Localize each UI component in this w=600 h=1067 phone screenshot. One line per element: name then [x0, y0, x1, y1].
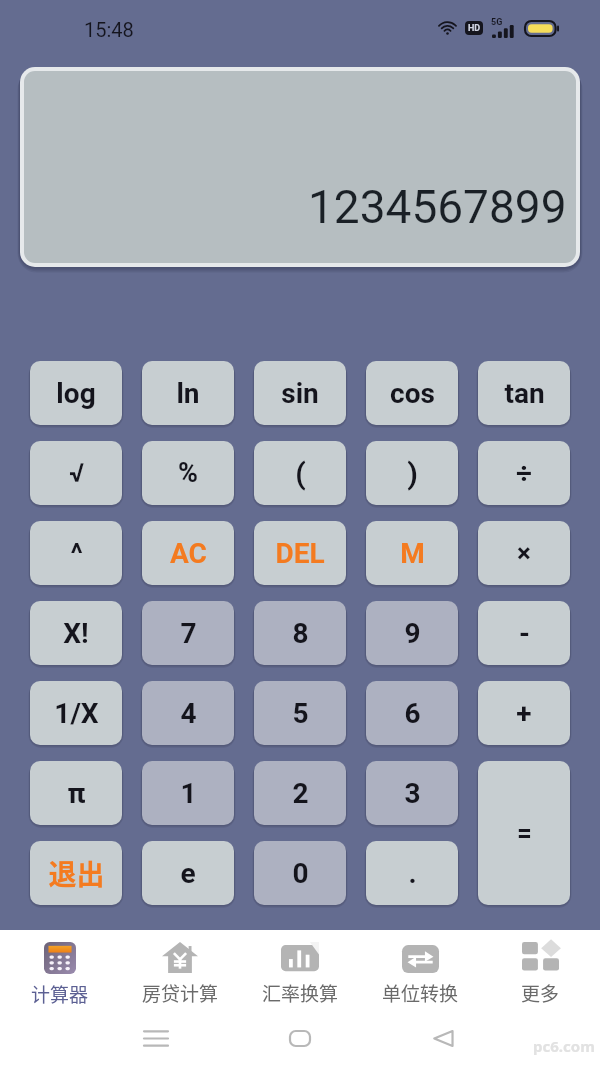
staticText: 2 [292, 777, 309, 810]
staticText: 计算器 [31, 980, 89, 1008]
button[interactable]: × [478, 521, 570, 585]
staticText: 房贷计算 [142, 979, 219, 1007]
staticText: HD [468, 23, 481, 34]
staticText: 1 [180, 777, 197, 810]
button[interactable]: + [478, 681, 570, 745]
staticText: - [519, 617, 530, 650]
staticText: 退出 [48, 853, 105, 894]
staticText: 15:48 [84, 18, 134, 41]
button[interactable]: Recent apps [116, 1015, 196, 1061]
button[interactable]: log [30, 361, 122, 425]
button[interactable]: X! [30, 601, 122, 665]
staticText: . [408, 857, 417, 890]
button[interactable]: AC [142, 521, 234, 585]
staticText: 0 [292, 857, 309, 890]
staticText: 5G [491, 17, 503, 28]
button[interactable]: % [142, 441, 234, 505]
staticText: × [517, 538, 531, 568]
staticText: 1234567899 [308, 180, 567, 234]
staticText: tan [504, 377, 545, 410]
button[interactable]: 5 [254, 681, 346, 745]
button[interactable]: 8 [254, 601, 346, 665]
staticText: 8 [292, 617, 309, 650]
button[interactable]: = [478, 761, 570, 905]
staticText: pc6.com [533, 1036, 595, 1056]
button[interactable]: 9 [366, 601, 458, 665]
staticText: % [178, 457, 198, 489]
staticText: 7 [180, 617, 197, 650]
staticText: 5 [292, 697, 309, 730]
button[interactable]: ln [142, 361, 234, 425]
staticText: √ [69, 458, 84, 488]
staticText: 6 [404, 697, 421, 730]
staticText: sin [281, 377, 319, 410]
button[interactable]: 7 [142, 601, 234, 665]
button[interactable]: 计算器 [0, 930, 120, 1010]
button[interactable]: . [366, 841, 458, 905]
staticText: 1/X [54, 697, 99, 730]
staticText: 单位转换 [382, 979, 459, 1007]
staticText: 9 [404, 617, 421, 650]
staticText: ^ [70, 537, 83, 570]
staticText: e [180, 857, 196, 890]
button[interactable]: π [30, 761, 122, 825]
staticText: π [67, 777, 86, 810]
staticText: log [56, 377, 96, 410]
button[interactable]: DEL [254, 521, 346, 585]
staticText: X! [63, 617, 89, 650]
button[interactable]: 1 [142, 761, 234, 825]
button[interactable]: 更多 [480, 930, 600, 1010]
button[interactable]: 退出 [30, 841, 122, 905]
button[interactable]: ÷ [478, 441, 570, 505]
staticText: AC [170, 537, 207, 570]
button[interactable]: Home [260, 1015, 340, 1061]
button[interactable]: √ [30, 441, 122, 505]
staticText: 3 [404, 777, 421, 810]
button[interactable]: 2 [254, 761, 346, 825]
button[interactable]: 6 [366, 681, 458, 745]
staticText: M [400, 537, 425, 570]
button[interactable]: 1/X [30, 681, 122, 745]
button[interactable]: tan [478, 361, 570, 425]
staticText: cos [390, 377, 435, 410]
staticText: ( [295, 456, 306, 491]
button[interactable]: sin [254, 361, 346, 425]
button[interactable]: cos [366, 361, 458, 425]
button[interactable]: e [142, 841, 234, 905]
button[interactable]: 3 [366, 761, 458, 825]
staticText: ÷ [516, 457, 532, 490]
button[interactable]: 4 [142, 681, 234, 745]
button[interactable]: M [366, 521, 458, 585]
staticText: DEL [275, 537, 325, 570]
staticText: + [516, 697, 532, 730]
staticText: 更多 [521, 979, 560, 1007]
button[interactable]: Back [403, 1015, 483, 1061]
button[interactable]: ^ [30, 521, 122, 585]
button[interactable]: ( [254, 441, 346, 505]
staticText: ln [176, 377, 200, 410]
staticText: = [517, 818, 532, 848]
button[interactable]: 单位转换 [360, 930, 480, 1010]
button[interactable]: 汇率换算 [240, 930, 360, 1010]
button[interactable]: ) [366, 441, 458, 505]
staticText: ) [407, 456, 418, 491]
staticText: 4 [180, 697, 197, 730]
staticText: 汇率换算 [262, 979, 339, 1007]
button[interactable]: 房贷计算 [120, 930, 240, 1010]
button[interactable]: 0 [254, 841, 346, 905]
button[interactable]: - [478, 601, 570, 665]
